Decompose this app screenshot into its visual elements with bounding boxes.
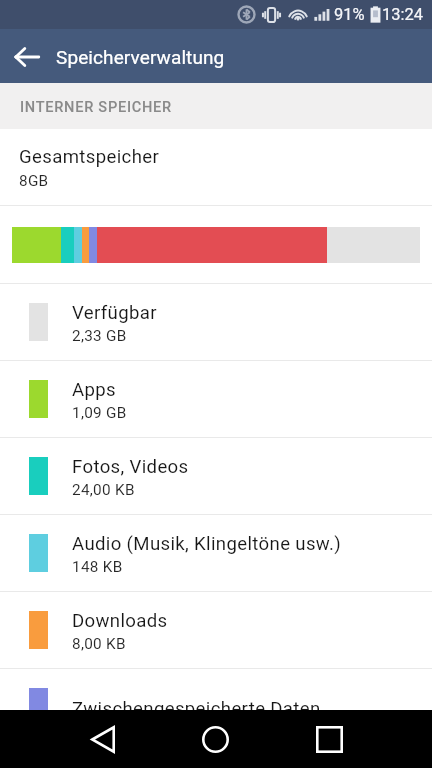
staticText: 2,33 GB — [72, 327, 127, 345]
button[interactable]: Apps — [0, 360, 432, 437]
staticText: Speicherverwaltung — [56, 46, 225, 68]
staticText: 13:24 — [382, 5, 424, 24]
button[interactable]: Back — [0, 30, 52, 84]
button[interactable]: Gesamtspeicher — [0, 129, 432, 205]
staticText: Downloads — [72, 610, 168, 632]
button[interactable]: Home — [187, 710, 244, 768]
button[interactable]: Audio (Musik, Klingeltöne usw.) — [0, 514, 432, 591]
staticText: 8,00 KB — [72, 635, 126, 653]
staticText: 8GB — [19, 172, 49, 190]
staticText: Apps — [72, 379, 117, 401]
button[interactable]: Zwischengespeicherte Daten — [0, 668, 432, 745]
staticText: Fotos, Videos — [72, 456, 189, 478]
staticText: 148 KB — [72, 558, 123, 576]
button[interactable]: Recent apps — [301, 710, 358, 768]
staticText: INTERNER SPEICHER — [20, 98, 172, 115]
staticText: Verfügbar — [72, 302, 157, 324]
staticText: Zwischengespeicherte Daten — [72, 698, 321, 720]
button[interactable]: Verfügbar — [0, 283, 432, 360]
staticText: 91% — [334, 5, 365, 24]
button[interactable]: Back — [74, 710, 131, 768]
staticText: 24,00 KB — [72, 481, 135, 499]
button[interactable]: Fotos, Videos — [0, 437, 432, 514]
staticText: Audio (Musik, Klingeltöne usw.) — [72, 533, 342, 555]
button[interactable]: Downloads — [0, 591, 432, 668]
staticText: Gesamtspeicher — [19, 146, 160, 168]
staticText: 1,09 GB — [72, 404, 127, 422]
